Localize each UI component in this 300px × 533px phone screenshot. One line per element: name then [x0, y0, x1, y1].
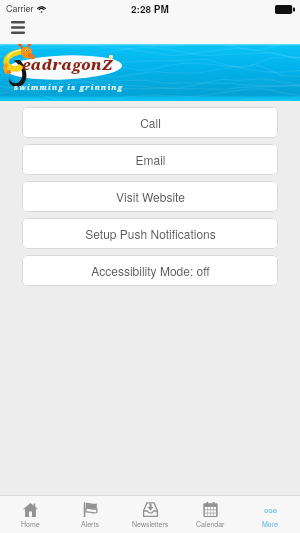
button[interactable]: Menu — [3, 18, 33, 36]
button[interactable]: Home — [0, 496, 60, 533]
staticText: Alerts — [81, 519, 100, 529]
staticText: Email — [135, 151, 166, 168]
button[interactable]: Call — [22, 107, 278, 138]
button[interactable]: Newsletters — [120, 496, 180, 533]
staticText: Call — [140, 114, 161, 131]
button[interactable]: Calendar — [180, 496, 240, 533]
staticText: Visit Website — [116, 188, 185, 205]
staticText: More — [262, 519, 278, 529]
staticText: Newsletters — [132, 519, 169, 529]
button[interactable]: Accessibility Mode: off — [22, 255, 278, 286]
button[interactable]: Setup Push Notifications — [22, 218, 278, 249]
staticText: Calendar — [196, 519, 225, 529]
staticText: eadragonZ — [22, 54, 113, 74]
staticText: Home — [21, 519, 40, 529]
staticText: Carrier — [6, 2, 34, 15]
staticText: Accessibility Mode: off — [91, 262, 210, 279]
button[interactable]: Visit Website — [22, 181, 278, 212]
button[interactable]: Alerts — [60, 496, 120, 533]
button[interactable]: Email — [22, 144, 278, 175]
staticText: 2:28 PM — [131, 2, 169, 16]
staticText: Setup Push Notifications — [85, 225, 216, 242]
button[interactable]: More — [240, 496, 300, 533]
staticText: swimming is grinning — [14, 82, 124, 92]
